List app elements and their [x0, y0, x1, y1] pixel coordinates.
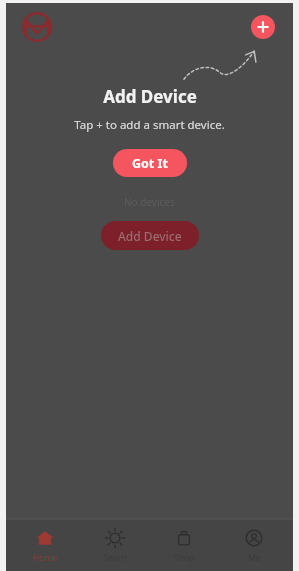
- button[interactable]: Smart: [84, 523, 146, 568]
- button[interactable]: Got It: [113, 149, 187, 177]
- button[interactable]: Add device: [251, 15, 275, 39]
- staticText: Add Device: [118, 228, 182, 244]
- staticText: Tap + to add a smart device.: [74, 117, 225, 133]
- staticText: Home: [33, 552, 58, 564]
- button[interactable]: Shop: [153, 523, 215, 568]
- button[interactable]: Add Device: [101, 221, 199, 250]
- staticText: Add Device: [103, 85, 197, 108]
- staticText: Got It: [132, 155, 168, 172]
- button[interactable]: Me: [223, 523, 285, 568]
- button[interactable]: Home: [14, 523, 76, 568]
- staticText: No devices: [124, 195, 175, 209]
- button[interactable]: Brand logo: [22, 12, 52, 42]
